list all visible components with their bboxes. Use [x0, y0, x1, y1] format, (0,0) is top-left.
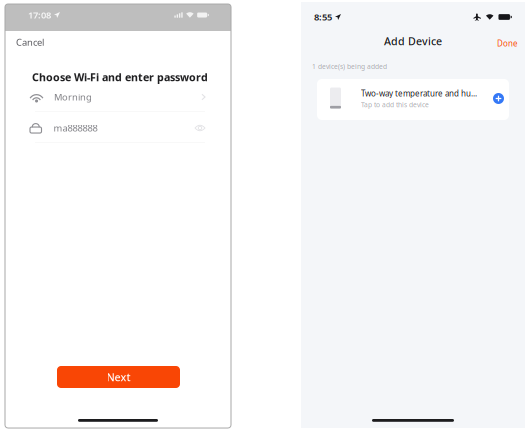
- staticText: Done: [497, 38, 518, 49]
- button[interactable]: Two-way temperature and hu...: [317, 79, 509, 120]
- staticText: Two-way temperature and hu...: [361, 88, 477, 99]
- button[interactable]: Cancel: [10, 32, 50, 52]
- staticText: Tap to add this device: [361, 100, 429, 109]
- staticText: Choose Wi-Fi and enter password: [32, 70, 208, 84]
- staticText: Add Device: [384, 34, 442, 48]
- button[interactable]: ma888888: [5, 117, 231, 139]
- staticText: 8:55: [314, 11, 332, 23]
- staticText: Cancel: [16, 36, 44, 48]
- staticText: Morning: [54, 91, 92, 103]
- staticText: 17:08: [28, 9, 51, 21]
- button[interactable]: Next: [57, 366, 180, 388]
- button[interactable]: Add this device: [489, 89, 508, 108]
- button[interactable]: Morning: [5, 86, 231, 108]
- button[interactable]: Done: [492, 34, 523, 53]
- staticText: 1 device(s) being added: [312, 62, 387, 71]
- staticText: ma888888: [53, 122, 97, 134]
- staticText: Next: [106, 370, 130, 384]
